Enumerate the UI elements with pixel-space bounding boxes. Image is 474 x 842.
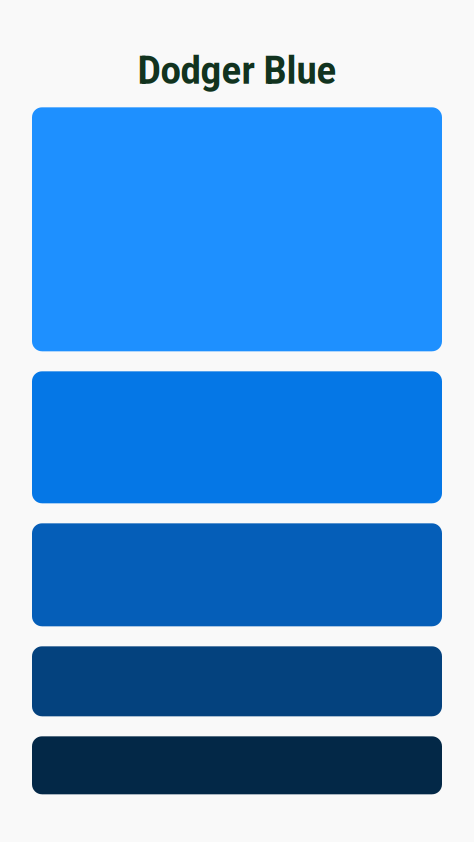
- button[interactable]: Dodger Blue shade 3: [32, 523, 442, 626]
- button[interactable]: Dodger Blue shade 4: [32, 646, 442, 716]
- button[interactable]: Dodger Blue shade 5: [32, 736, 442, 794]
- button[interactable]: Dodger Blue shade 2: [32, 371, 442, 503]
- staticText: Dodger Blue: [137, 48, 336, 93]
- button[interactable]: Dodger Blue: [32, 107, 442, 351]
